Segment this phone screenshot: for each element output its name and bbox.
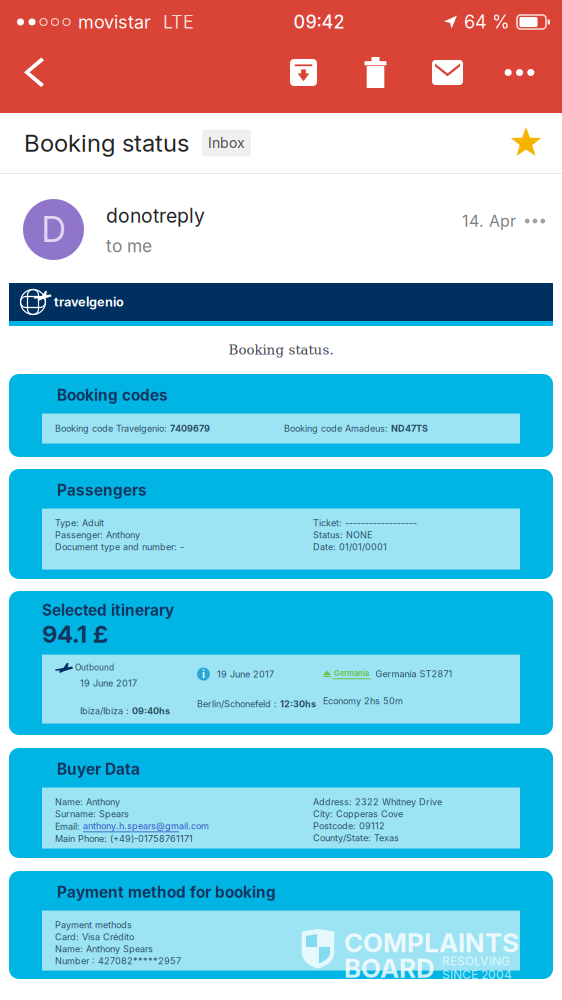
- staticText: Name: Anthony Spears: [55, 943, 153, 954]
- staticText: Document type and number: -: [55, 541, 184, 552]
- staticText: 19 June 2017: [217, 669, 274, 680]
- staticText: Buyer Data: [57, 760, 140, 779]
- staticText: travelgenio: [54, 294, 124, 310]
- staticText: Booking status.: [228, 342, 333, 358]
- staticText: Payment methods: [55, 920, 132, 931]
- button[interactable]: Star: [503, 118, 549, 168]
- button[interactable]: Mark as unread: [411, 44, 483, 101]
- staticText: Passengers: [57, 481, 147, 500]
- staticText: i: [202, 668, 205, 680]
- staticText: Payment method for booking: [57, 883, 276, 902]
- staticText: Card: Visa Crédito: [55, 931, 134, 942]
- staticText: Ibiza/Ibiza :: [80, 706, 132, 717]
- staticText: LTE: [163, 11, 194, 33]
- staticText: Germania: [334, 669, 369, 678]
- staticText: Main Phone: (+49)-01758761171: [55, 833, 193, 844]
- staticText: SINCE 2004: [442, 967, 512, 982]
- staticText: anthony.h.spears@gmail.com: [83, 820, 209, 831]
- staticText: ND47TS: [391, 423, 428, 434]
- staticText: Berlin/Schonefeld :: [197, 699, 280, 710]
- button[interactable]: Delete: [339, 44, 411, 101]
- staticText: COMPLAINTS: [344, 927, 519, 958]
- staticText: donotreply: [106, 204, 205, 227]
- staticText: Name: Anthony: [55, 797, 120, 808]
- staticText: Number : 427082*****2957: [55, 955, 181, 966]
- staticText: D: [41, 208, 65, 250]
- staticText: Outbound: [75, 663, 114, 673]
- staticText: 09:42: [293, 11, 344, 33]
- staticText: Germania ST2871: [375, 669, 452, 680]
- button[interactable]: Archive: [267, 44, 339, 101]
- staticText: Booking code Travelgenio:: [55, 423, 170, 434]
- staticText: Booking codes: [57, 386, 168, 405]
- staticText: County/State: Texas: [313, 832, 399, 843]
- staticText: Postcode: 09112: [313, 820, 385, 831]
- staticText: RESOLVING: [442, 954, 510, 968]
- staticText: Booking status: [24, 128, 189, 157]
- staticText: 64 %: [464, 11, 510, 33]
- staticText: Economy 2hs 50m: [323, 696, 403, 707]
- staticText: Surname: Spears: [55, 808, 129, 819]
- staticText: 19 June 2017: [80, 678, 137, 689]
- staticText: Email:: [55, 821, 83, 832]
- staticText: 09:40hs: [132, 706, 170, 717]
- staticText: Type: Adult: [55, 518, 104, 529]
- staticText: 12:30hs: [280, 699, 316, 710]
- staticText: Selected itinerary: [42, 601, 174, 620]
- staticText: movistar: [78, 11, 151, 33]
- staticText: BOARD: [344, 952, 435, 984]
- staticText: Passenger: Anthony: [55, 529, 140, 540]
- button[interactable]: Back: [4, 44, 64, 101]
- staticText: 14. Apr: [462, 211, 516, 231]
- staticText: 7409679: [170, 423, 210, 434]
- staticText: to me: [106, 235, 152, 256]
- staticText: Status: NONE: [313, 529, 372, 540]
- staticText: Date: 01/01/0001: [313, 541, 387, 552]
- staticText: Booking code Amadeus:: [284, 423, 391, 434]
- staticText: Address: 2322 Whitney Drive: [313, 797, 442, 808]
- staticText: Ticket: ------------------: [313, 518, 417, 529]
- button[interactable]: More: [516, 206, 554, 236]
- staticText: Inbox: [208, 134, 245, 151]
- staticText: City: Copperas Cove: [313, 808, 403, 819]
- button[interactable]: More options: [483, 48, 555, 96]
- staticText: 94.1 £: [42, 620, 108, 649]
